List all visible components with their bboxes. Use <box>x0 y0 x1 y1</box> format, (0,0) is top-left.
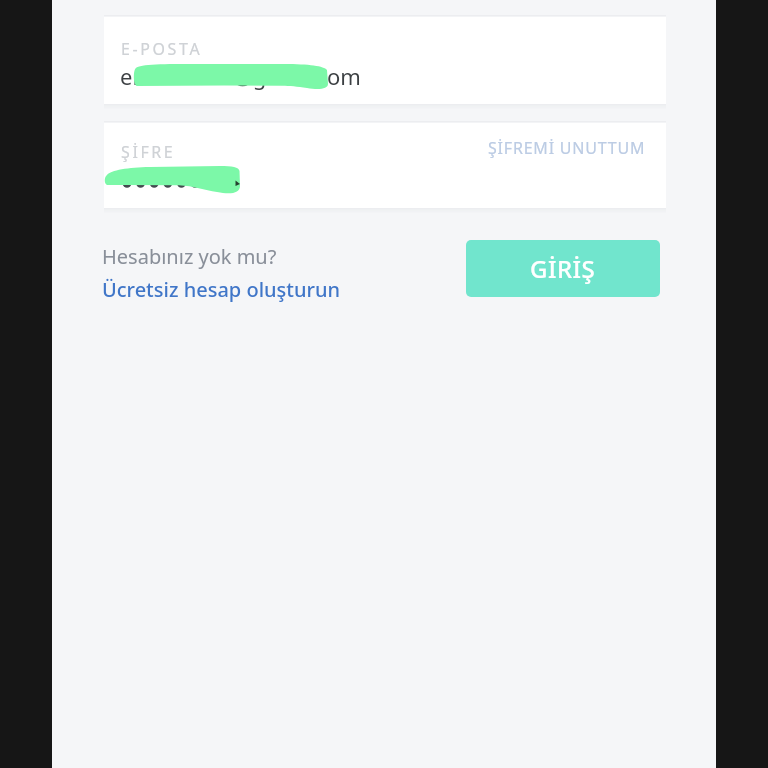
staticText: ŞİFREMİ UNUTTUM <box>488 137 646 159</box>
button[interactable]: Ücretsiz hesap oluşturun <box>102 276 341 303</box>
button[interactable]: GİRİŞ <box>466 240 660 297</box>
button[interactable]: ŞİFREMİ UNUTTUM <box>488 137 646 159</box>
staticText: Hesabınız yok mu? <box>102 243 277 270</box>
staticText: erdemnurr@gmail.com <box>120 61 361 91</box>
staticText: Ücretsiz hesap oluşturun <box>102 276 341 303</box>
staticText: ŞİFRE <box>121 141 176 163</box>
staticText: GİRİŞ <box>530 252 596 285</box>
button[interactable]: E-posta alanı <box>104 16 666 104</box>
staticText: E-POSTA <box>121 38 203 60</box>
button[interactable]: Şifre alanı <box>104 122 666 208</box>
